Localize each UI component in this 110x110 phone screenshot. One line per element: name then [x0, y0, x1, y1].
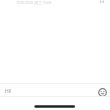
- staticText: Hi!: [5, 88, 12, 95]
- button[interactable]: Hi!: [5, 88, 12, 95]
- staticText: 10月23日 周三 9:24: [16, 0, 52, 5]
- button[interactable]: Emoji: [97, 87, 107, 97]
